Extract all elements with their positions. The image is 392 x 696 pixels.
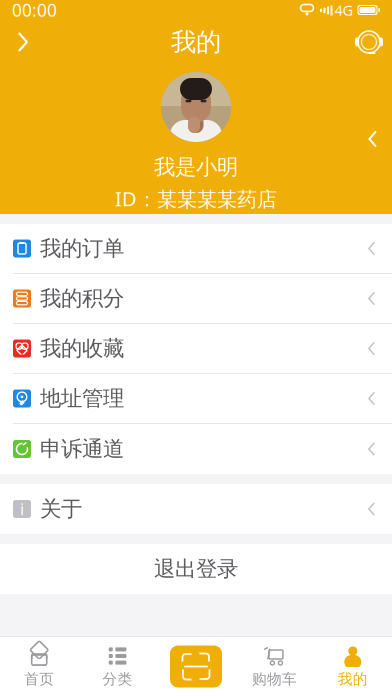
button[interactable]: i xyxy=(0,484,392,534)
button[interactable]: 我的订单 xyxy=(0,224,392,274)
button[interactable]: 分类 xyxy=(78,637,157,696)
button[interactable]: 购物车 xyxy=(235,637,314,696)
button[interactable]: 客服 xyxy=(346,20,392,64)
staticText: 4G xyxy=(334,0,353,20)
staticText: 申诉通道 xyxy=(40,436,124,462)
staticText: 分类 xyxy=(103,670,133,688)
button[interactable]: 我是小明 xyxy=(0,64,392,214)
button[interactable]: 地址管理 xyxy=(0,374,392,424)
button[interactable]: 扫一扫 xyxy=(157,637,235,696)
staticText: 我是小明 xyxy=(154,154,238,180)
button[interactable]: 我的积分 xyxy=(0,274,392,324)
button[interactable]: 我的 xyxy=(314,637,392,696)
staticText: 购物车 xyxy=(252,670,297,688)
staticText: ID：某某某某药店 xyxy=(115,185,277,212)
button[interactable]: 申诉通道 xyxy=(0,424,392,474)
button[interactable]: 退出登录 xyxy=(0,544,392,594)
staticText: 地址管理 xyxy=(40,385,124,412)
staticText: 关于 xyxy=(40,496,82,522)
staticText: 我的订单 xyxy=(40,235,124,262)
staticText: i xyxy=(20,498,24,520)
staticText: 退出登录 xyxy=(154,556,238,582)
staticText: 我的 xyxy=(338,670,368,688)
staticText: 00:00 xyxy=(12,0,57,21)
button[interactable]: 首页 xyxy=(0,637,78,696)
staticText: 我的收藏 xyxy=(40,335,124,362)
staticText: 我的 xyxy=(171,26,221,57)
staticText: 我的积分 xyxy=(40,285,124,312)
staticText: 首页 xyxy=(24,670,54,688)
button[interactable]: 返回 xyxy=(0,20,46,64)
button[interactable]: 我的收藏 xyxy=(0,324,392,374)
